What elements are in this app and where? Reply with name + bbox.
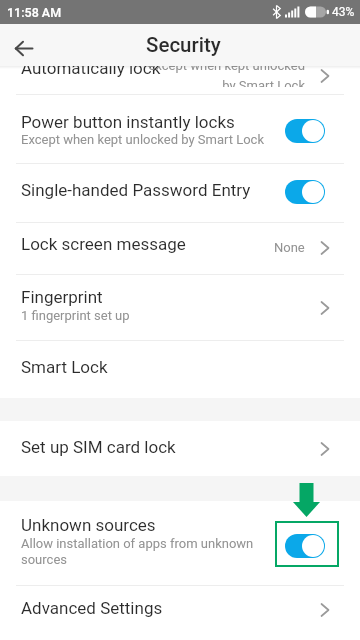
staticText: 43%	[332, 5, 355, 19]
button[interactable]	[15, 41, 33, 56]
button[interactable]	[285, 119, 325, 143]
staticText: Advanced Settings	[21, 598, 163, 618]
staticText: None	[274, 240, 305, 255]
staticText: Lock screen message	[21, 234, 186, 254]
staticText: Automatically lock	[21, 66, 161, 78]
staticText: except when kept unlocked by Smart Lock	[148, 66, 305, 87]
button[interactable]	[285, 180, 325, 204]
button[interactable]: Advanced Settings	[0, 586, 360, 640]
button[interactable]: Set up SIM card lock	[0, 421, 360, 476]
staticText: Power button instantly locks	[21, 112, 235, 132]
staticText: Set up SIM card lock	[21, 437, 176, 457]
staticText: Security	[146, 33, 221, 57]
staticText: Allow installation of apps from unknown …	[21, 536, 254, 567]
button[interactable]: Unknown sources	[0, 501, 360, 586]
button[interactable]: Power button instantly locks	[0, 95, 360, 164]
button[interactable]: Fingerprint	[0, 275, 360, 341]
staticText: Except when kept unlocked by Smart Lock	[21, 132, 264, 147]
staticText: 1 fingerprint set up	[21, 308, 130, 323]
staticText: Single-handed Password Entry	[21, 180, 251, 200]
staticText: Fingerprint	[21, 287, 103, 307]
staticText: Smart Lock	[21, 357, 108, 377]
button[interactable]: Smart Lock	[0, 341, 360, 398]
button[interactable]: Lock screen message	[0, 223, 360, 275]
button[interactable]: Single-handed Password Entry	[0, 164, 360, 223]
staticText: Unknown sources	[21, 515, 156, 535]
button[interactable]: Automatically lock	[0, 66, 360, 95]
staticText: 11:58 AM	[7, 5, 62, 20]
button[interactable]	[285, 534, 325, 558]
